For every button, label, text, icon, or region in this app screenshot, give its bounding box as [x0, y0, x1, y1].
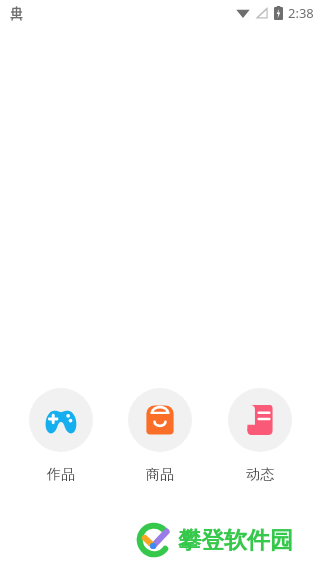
staticText: 作品 [47, 466, 75, 484]
staticText: 2:38 [288, 4, 314, 22]
button[interactable]: 商品 [113, 388, 207, 484]
button[interactable]: 动态 [213, 388, 307, 484]
staticText: 商品 [146, 466, 174, 484]
staticText: 动态 [246, 466, 274, 484]
staticText: 攀登软件园 [178, 526, 293, 555]
button[interactable]: 作品 [14, 388, 108, 484]
